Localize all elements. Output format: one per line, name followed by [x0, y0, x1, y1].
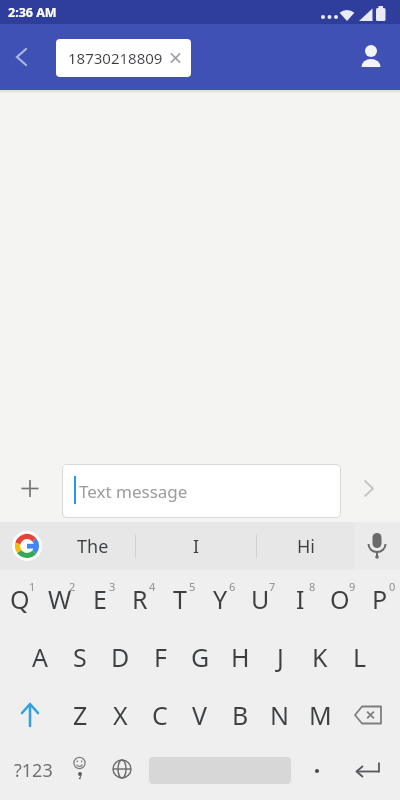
button[interactable]: E [80, 570, 120, 628]
staticText: J [277, 640, 284, 674]
button[interactable] [341, 455, 400, 522]
button[interactable]: F [140, 628, 180, 686]
button[interactable]: W [40, 570, 80, 628]
button[interactable]: 18730218809 [56, 39, 191, 77]
staticText: E [93, 582, 107, 616]
button[interactable] [0, 686, 60, 744]
staticText: H [231, 640, 250, 674]
staticText: 2:36 AM [8, 4, 57, 21]
button[interactable]: H [220, 628, 260, 686]
button[interactable] [340, 686, 400, 744]
staticText: G [191, 640, 210, 674]
staticText: I [193, 534, 200, 559]
staticText: 8 [309, 579, 316, 594]
staticText: 4 [149, 579, 156, 594]
staticText: D [111, 640, 130, 674]
button[interactable]: J [260, 628, 300, 686]
staticText: W [48, 582, 72, 616]
button[interactable]: B [220, 686, 260, 744]
staticText: 9 [349, 579, 356, 594]
staticText: U [251, 582, 270, 616]
staticText: B [232, 698, 249, 732]
button[interactable]: Y [200, 570, 240, 628]
staticText: Q [10, 582, 30, 616]
staticText: V [192, 698, 208, 732]
button[interactable]: A [20, 628, 60, 686]
staticText: F [154, 640, 167, 674]
staticText: 18730218809 [68, 48, 163, 68]
staticText: Text message [79, 480, 188, 503]
button[interactable]: D [100, 628, 140, 686]
button[interactable]: ?123 [0, 744, 66, 800]
staticText: 2 [69, 579, 76, 594]
button[interactable]: R [120, 570, 160, 628]
staticText: A [32, 640, 48, 674]
button[interactable]: X [100, 686, 140, 744]
button[interactable]: C [140, 686, 180, 744]
button[interactable]: I [136, 522, 256, 570]
button[interactable] [0, 35, 44, 79]
button[interactable]: Hi [257, 522, 354, 570]
staticText: I [296, 582, 305, 616]
button[interactable]: S [60, 628, 100, 686]
staticText: 3 [109, 579, 116, 594]
button[interactable] [102, 744, 142, 800]
button[interactable]: V [180, 686, 220, 744]
staticText: 5 [189, 579, 196, 594]
button[interactable]: M [300, 686, 340, 744]
button[interactable] [298, 744, 340, 800]
button[interactable]: N [260, 686, 300, 744]
button[interactable]: Text message [62, 464, 341, 518]
staticText: The [77, 534, 109, 559]
staticText: S [73, 640, 87, 674]
staticText: Hi [297, 534, 315, 559]
button[interactable]: K [300, 628, 340, 686]
staticText: C [152, 698, 168, 732]
staticText: N [270, 698, 290, 732]
button[interactable] [0, 522, 51, 570]
staticText: 7 [269, 579, 276, 594]
staticText: K [312, 640, 328, 674]
staticText: X [113, 698, 128, 732]
button[interactable]: P [360, 570, 400, 628]
button[interactable] [142, 744, 298, 800]
staticText: 1 [29, 579, 36, 594]
staticText: M [309, 698, 332, 732]
button[interactable] [340, 744, 400, 800]
button[interactable] [352, 33, 400, 81]
button[interactable]: Q [0, 570, 40, 628]
staticText: R [132, 582, 148, 616]
button[interactable] [354, 522, 400, 570]
staticText: ?123 [14, 758, 53, 783]
staticText: Z [73, 698, 88, 732]
button[interactable]: G [180, 628, 220, 686]
button[interactable] [0, 455, 60, 522]
button[interactable]: I [280, 570, 320, 628]
button[interactable]: O [320, 570, 360, 628]
button[interactable]: Z [60, 686, 100, 744]
button[interactable]: T [160, 570, 200, 628]
button[interactable]: L [340, 628, 380, 686]
button[interactable]: The [51, 522, 135, 570]
staticText: L [353, 640, 367, 674]
button[interactable] [66, 744, 102, 800]
staticText: 0 [389, 579, 396, 594]
button[interactable]: U [240, 570, 280, 628]
staticText: P [372, 582, 388, 616]
staticText: O [330, 582, 350, 616]
staticText: Y [213, 582, 228, 616]
staticText: 6 [229, 579, 236, 594]
staticText: T [173, 582, 187, 616]
